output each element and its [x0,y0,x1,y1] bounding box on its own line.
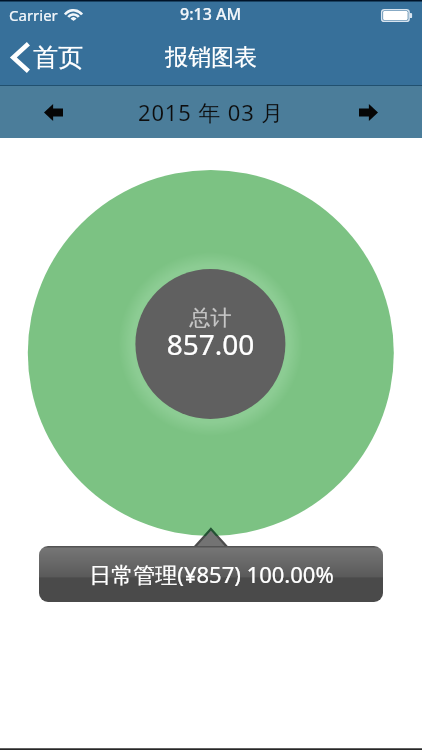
staticText: 报销图表 [165,43,257,72]
button[interactable]: Previous month [34,94,73,131]
staticText: 2015 年 03 月 [138,97,285,127]
button[interactable]: 首页 [0,34,97,81]
button[interactable]: 日常管理(¥857) 100.00% [39,546,383,602]
staticText: 857.00 [110,325,311,363]
button[interactable]: Next month [349,94,388,131]
staticText: 总计 [110,305,311,331]
staticText: 9:13 AM [180,3,242,25]
staticText: Carrier [9,5,58,25]
staticText: 日常管理(¥857) 100.00% [89,559,334,589]
staticText: 首页 [33,42,83,73]
